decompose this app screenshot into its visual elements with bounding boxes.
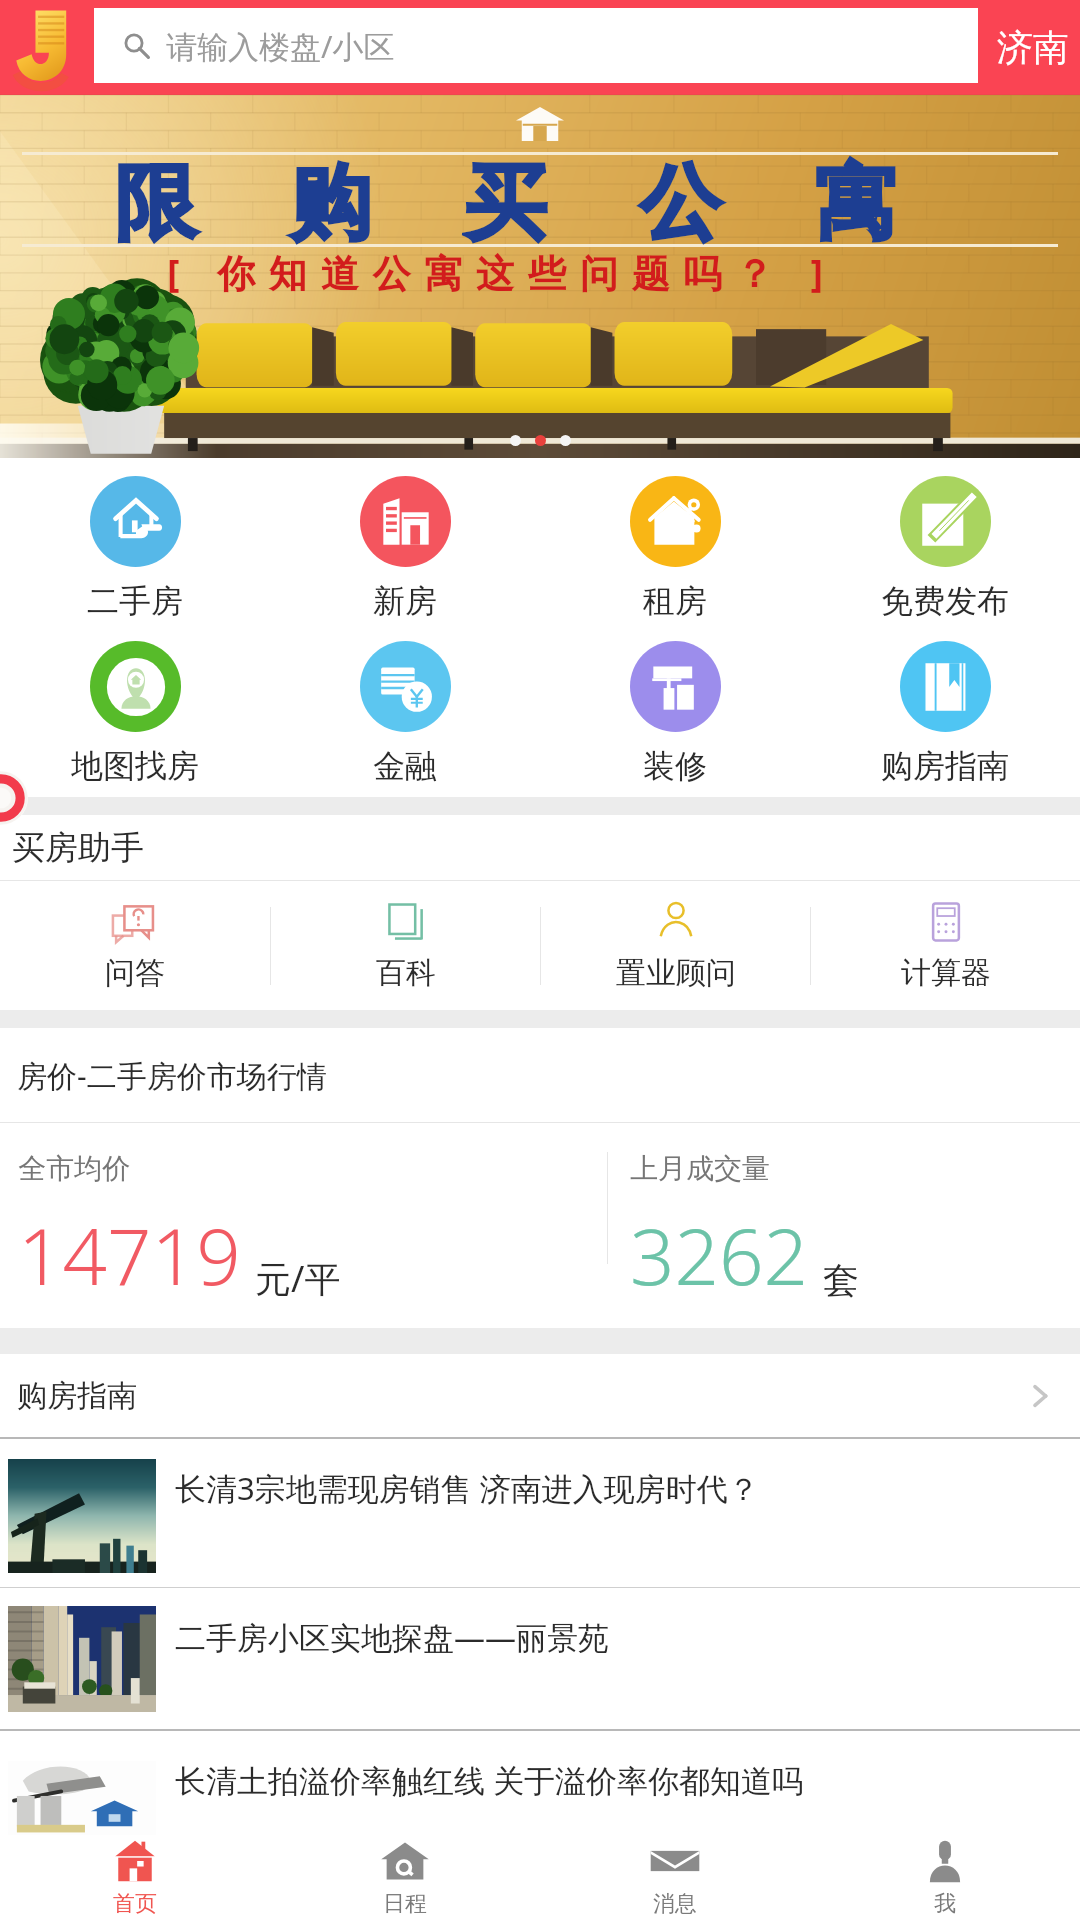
staticText: 二手房 — [87, 581, 183, 621]
staticText: 金融 — [373, 746, 437, 786]
button[interactable]: Promotion — [0, 771, 28, 825]
button[interactable]: 计算器 — [811, 881, 1080, 1010]
staticText: 买房助手 — [12, 827, 144, 869]
staticText: 问答 — [105, 954, 165, 992]
button[interactable]: 二手房小区实地探盘——丽景苑 — [0, 1588, 1080, 1729]
staticText: 我 — [934, 1890, 956, 1918]
button[interactable]: Schedule — [270, 1835, 540, 1920]
staticText: 长清土拍溢价率触红线 关于溢价率你都知道吗 — [175, 1759, 1080, 1801]
staticText: 装修 — [643, 746, 707, 786]
staticText: 请输入楼盘/小区 — [166, 25, 395, 67]
staticText: 置业顾问 — [616, 954, 736, 992]
button[interactable]: 问答 — [0, 881, 270, 1010]
button[interactable]: Me — [810, 1835, 1080, 1920]
button[interactable]: 济南 — [985, 0, 1080, 95]
staticText: [ 你知道公寓这些问题吗？ ] — [167, 246, 837, 298]
staticText: 免费发布 — [881, 581, 1009, 621]
staticText: 租房 — [643, 581, 707, 621]
staticText: 地图找房 — [71, 746, 199, 786]
button[interactable]: 新房 — [270, 458, 540, 623]
button[interactable]: 百科 — [271, 881, 540, 1010]
button[interactable]: 长清3宗地需现房销售 济南进入现房时代？ — [0, 1439, 1080, 1587]
staticText: 济南 — [997, 25, 1069, 70]
staticText: 限购买公寓 — [68, 152, 943, 255]
button[interactable]: 置业顾问 — [541, 881, 810, 1010]
button[interactable]: 全市均价 — [0, 1123, 607, 1328]
button[interactable]: 二手房 — [0, 458, 270, 623]
staticText: 套 — [823, 1258, 859, 1303]
staticText: 购房指南 — [881, 746, 1009, 786]
button[interactable]: 装修 — [540, 623, 810, 788]
staticText: 二手房小区实地探盘——丽景苑 — [175, 1616, 1080, 1658]
staticText: 百科 — [376, 954, 436, 992]
button[interactable]: 金融 — [270, 623, 540, 788]
button[interactable]: 地图找房 — [0, 623, 270, 788]
staticText: 全市均价 — [18, 1151, 130, 1186]
button[interactable]: 购房指南 — [810, 623, 1080, 788]
staticText: 购房指南 — [17, 1377, 1022, 1415]
staticText: 3262 — [630, 1202, 809, 1308]
button[interactable]: 请输入楼盘/小区 — [94, 8, 978, 83]
staticText: 14719 — [18, 1202, 241, 1308]
staticText: 计算器 — [901, 954, 991, 992]
staticText: 新房 — [373, 581, 437, 621]
button[interactable]: 长清土拍溢价率触红线 关于溢价率你都知道吗 — [0, 1731, 1080, 1881]
button[interactable]: Home — [0, 1835, 270, 1920]
button[interactable]: Logo — [11, 0, 83, 95]
staticText: 上月成交量 — [630, 1151, 770, 1186]
staticText: 房价-二手房价市场行情 — [17, 1055, 327, 1096]
button[interactable]: 免费发布 — [810, 458, 1080, 623]
button[interactable]: 上月成交量 — [608, 1123, 1080, 1328]
other: More guides — [1022, 1378, 1058, 1414]
button[interactable]: 租房 — [540, 458, 810, 623]
staticText: 日程 — [383, 1890, 427, 1918]
staticText: 首页 — [113, 1890, 157, 1918]
button[interactable]: 购房指南 — [0, 1354, 1080, 1437]
staticText: 元/平 — [255, 1254, 341, 1303]
button[interactable]: Messages — [540, 1835, 810, 1920]
staticText: 消息 — [653, 1890, 697, 1918]
staticText: 长清3宗地需现房销售 济南进入现房时代？ — [175, 1467, 1080, 1509]
